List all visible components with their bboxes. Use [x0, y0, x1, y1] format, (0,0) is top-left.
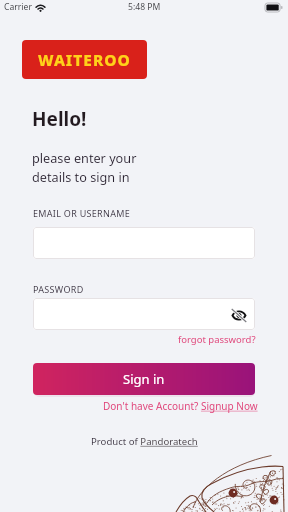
staticText: Sign in [123, 370, 165, 388]
staticText: Don't have Account? Signup Now [103, 399, 258, 413]
staticText: PASSWORD [33, 283, 84, 295]
button[interactable]: Don't have Account? Signup Now [34, 399, 258, 413]
button[interactable]: Show password [229, 303, 249, 327]
staticText: Hello! [32, 106, 87, 132]
button[interactable]: Product of Pandoratech [91, 435, 198, 448]
button[interactable]: Sign in [33, 363, 255, 395]
button[interactable]: forgot password? [33, 333, 256, 346]
staticText: EMAIL OR USERNAME [33, 207, 130, 219]
staticText: please enter your [32, 149, 137, 166]
button[interactable]: WAITEROO [22, 40, 147, 79]
staticText: details to sign in [32, 168, 130, 185]
staticText: Carrier [4, 1, 32, 13]
button[interactable]: Show password [33, 298, 255, 330]
staticText: Product of Pandoratech [91, 435, 198, 448]
staticText: forgot password? [178, 333, 256, 346]
button[interactable] [33, 227, 255, 259]
staticText: WAITEROO [38, 49, 131, 70]
staticText: 5:48 PM [128, 1, 161, 13]
